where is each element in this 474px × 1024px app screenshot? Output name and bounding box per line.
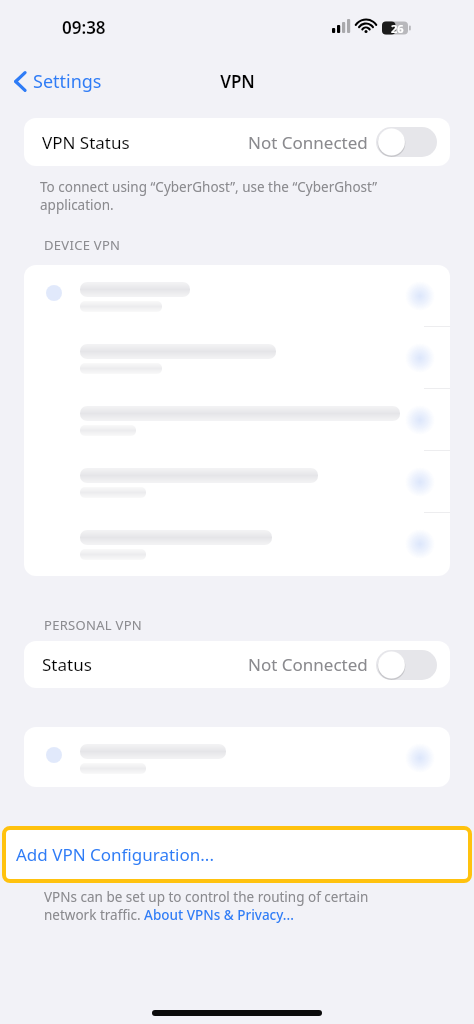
- staticText: VPN Status: [42, 131, 130, 154]
- staticText: PERSONAL VPN: [44, 616, 142, 634]
- button[interactable]: VPNs can be set up to control the routin…: [44, 888, 384, 924]
- staticText: Not Connected: [248, 131, 368, 154]
- staticText: 26: [391, 21, 404, 36]
- button[interactable]: VPN Status toggle, off: [376, 127, 437, 157]
- button[interactable]: More info: [405, 343, 435, 373]
- staticText: DEVICE VPN: [44, 236, 121, 254]
- staticText: 09:38: [62, 16, 106, 39]
- button[interactable]: Status: [24, 641, 450, 688]
- staticText: VPN: [220, 70, 255, 93]
- button[interactable]: Settings: [10, 63, 106, 100]
- button[interactable]: More info: [405, 281, 435, 311]
- staticText: Add VPN Configuration...: [16, 843, 214, 866]
- button[interactable]: More info: [405, 467, 435, 497]
- staticText: Settings: [33, 69, 102, 94]
- button[interactable]: Add VPN Configuration...: [6, 830, 468, 879]
- staticText: Status: [42, 653, 92, 676]
- button[interactable]: More info: [405, 529, 435, 559]
- staticText: Not Connected: [248, 653, 368, 676]
- button[interactable]: VPN Status: [24, 118, 450, 166]
- staticText: To connect using “CyberGhost”, use the “…: [40, 178, 430, 214]
- button[interactable]: More info: [405, 743, 435, 773]
- button[interactable]: Personal VPN status toggle, off: [376, 650, 437, 680]
- button[interactable]: More info: [405, 405, 435, 435]
